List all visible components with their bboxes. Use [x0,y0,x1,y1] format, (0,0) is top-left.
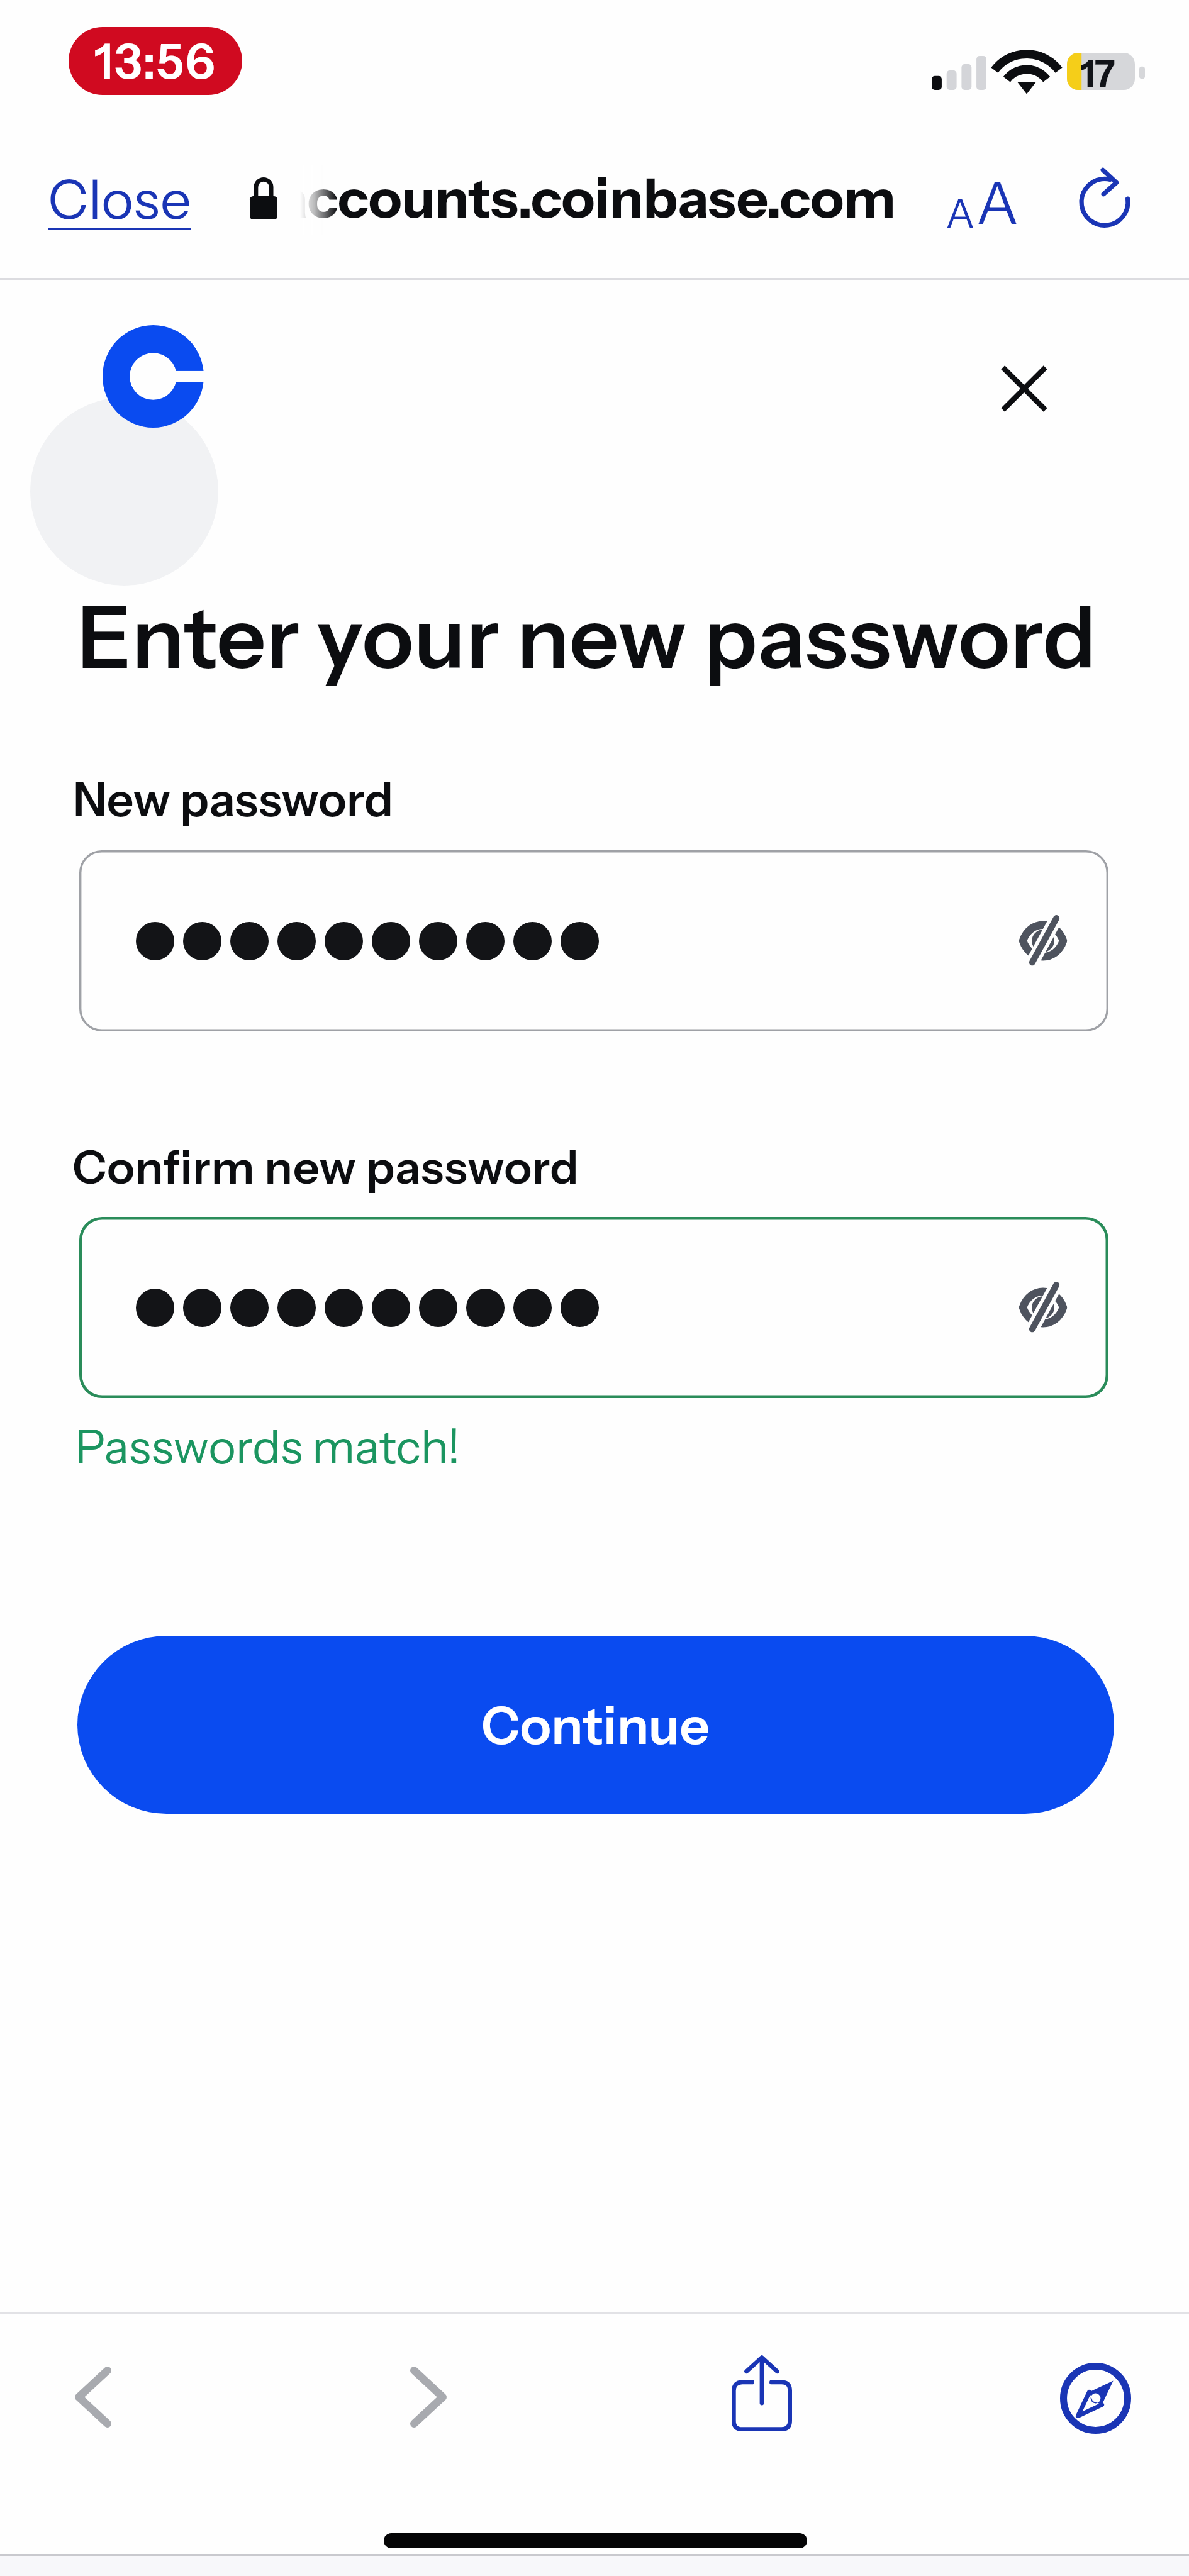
staticText: A [976,168,1019,238]
staticText: accounts.coinbase.com [277,165,895,231]
staticText: Passwords match! [75,1418,461,1475]
staticText: 17 [1081,52,1115,89]
button[interactable]: Close [983,348,1065,430]
staticText: Enter your new password [77,585,1097,689]
staticText: Close [48,166,191,233]
button[interactable]: Back [65,2359,121,2435]
staticText: Confirm new password [72,1139,579,1195]
staticText: 13:56 [94,32,217,91]
staticText: Continue [481,1694,710,1757]
staticText: A [946,189,975,238]
button[interactable]: Close [29,147,210,252]
button[interactable]: Show password [1007,904,1080,978]
staticText: New password [73,771,394,828]
button[interactable]: Forward [400,2359,457,2435]
button[interactable]: Show password [1007,1270,1080,1345]
button[interactable]: Share [722,2344,802,2441]
button[interactable]: Continue [77,1636,1114,1814]
button[interactable]: Reload [1066,160,1144,238]
button[interactable]: Open in Safari [1050,2353,1141,2444]
button[interactable]: Text size [929,152,1035,255]
